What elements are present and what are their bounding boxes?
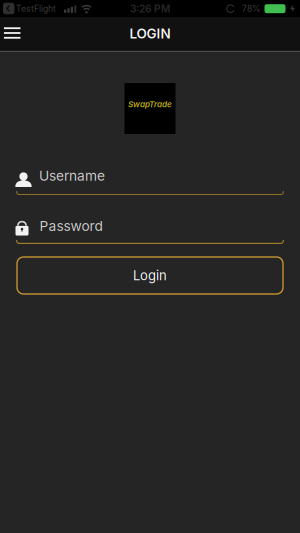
staticText: SwapTrade bbox=[128, 99, 172, 109]
staticText: Username bbox=[39, 167, 105, 184]
staticText: TestFlight bbox=[16, 3, 56, 14]
staticText: Login bbox=[133, 268, 167, 283]
staticText: 3:26 PM bbox=[130, 3, 170, 15]
staticText: LOGIN bbox=[129, 25, 170, 42]
staticText: 78% bbox=[242, 3, 260, 14]
staticText: Password bbox=[39, 218, 102, 234]
